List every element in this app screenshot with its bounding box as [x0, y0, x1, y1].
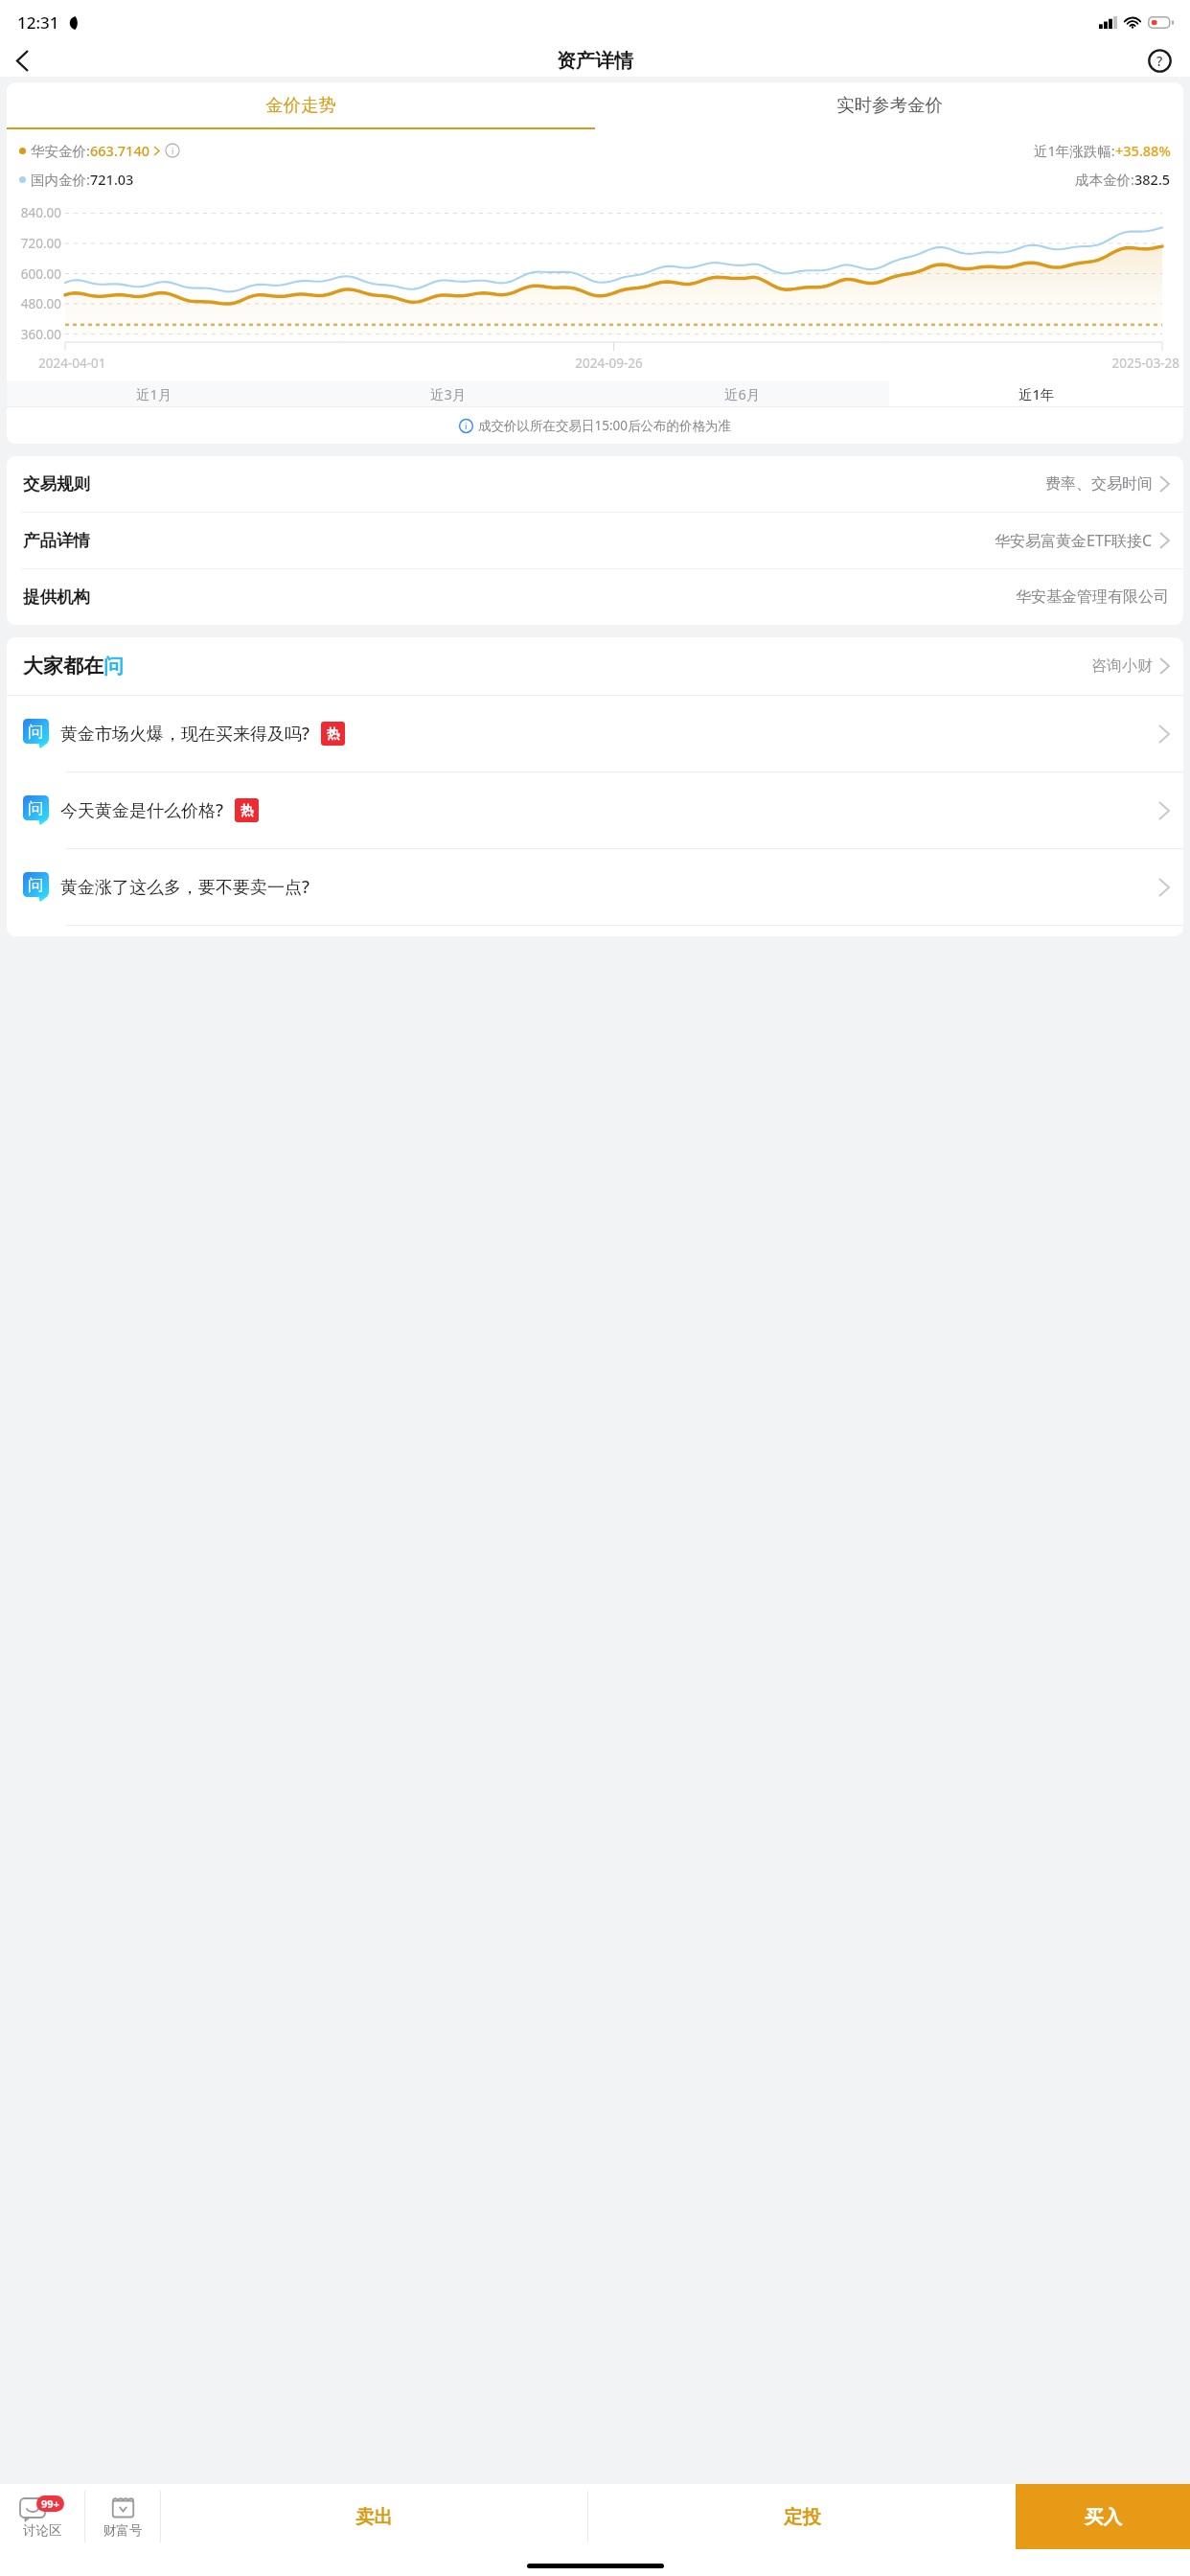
- staticText: 600.00: [14, 265, 61, 283]
- staticText: 华安易富黄金ETF联接C: [995, 530, 1153, 551]
- button[interactable]: 问: [7, 772, 1183, 848]
- staticText: 国内金价:: [31, 170, 90, 189]
- staticText: 成本金价:: [1075, 170, 1134, 189]
- staticText: 产品详情: [23, 530, 90, 551]
- button[interactable]: 定投: [588, 2484, 1016, 2549]
- staticText: 问: [28, 722, 44, 742]
- staticText: 华安金价:: [31, 141, 90, 160]
- button[interactable]: 问: [7, 849, 1183, 925]
- staticText: 今天黄金是什么价格?: [60, 798, 224, 822]
- button[interactable]: 交易规则: [7, 456, 1183, 512]
- button[interactable]: 实时参考金价: [595, 82, 1183, 127]
- staticText: 840.00: [14, 204, 61, 221]
- button[interactable]: Back: [0, 45, 44, 77]
- button[interactable]: Info: [165, 143, 180, 158]
- button[interactable]: 近3月: [301, 380, 595, 406]
- staticText: 663.7140: [90, 141, 150, 160]
- button[interactable]: Help: [1138, 45, 1180, 77]
- staticText: 382.5: [1134, 170, 1171, 189]
- staticText: 定投: [784, 2505, 821, 2529]
- staticText: 交易规则: [23, 473, 90, 494]
- button[interactable]: 近1月: [7, 380, 301, 406]
- staticText: 卖出: [355, 2505, 393, 2529]
- staticText: 问: [28, 875, 44, 895]
- staticText: i: [172, 145, 174, 157]
- staticText: 2025-03-28: [799, 355, 1179, 372]
- staticText: 成交价以所在交易日15:00后公布的价格为准: [478, 417, 732, 434]
- staticText: 财富号: [103, 2522, 143, 2539]
- button[interactable]: 大家都在: [7, 637, 1183, 695]
- staticText: 讨论区: [23, 2522, 62, 2539]
- staticText: 黄金涨了这么多，要不要卖一点?: [60, 875, 310, 899]
- staticText: 12:31: [17, 11, 59, 34]
- staticText: 近1年涨跌幅:: [1034, 141, 1115, 160]
- button[interactable]: 卖出: [161, 2484, 587, 2549]
- button[interactable]: 问: [7, 696, 1183, 771]
- staticText: 热: [327, 725, 340, 742]
- staticText: 实时参考金价: [836, 94, 943, 116]
- staticText: +35.88%: [1115, 141, 1171, 160]
- button[interactable]: 近1年: [889, 380, 1183, 406]
- staticText: 热: [240, 802, 254, 818]
- staticText: 买入: [1085, 2505, 1122, 2529]
- staticText: 720.00: [14, 235, 61, 252]
- staticText: 问: [28, 798, 44, 818]
- staticText: 360.00: [14, 326, 61, 343]
- button[interactable]: 金价走势: [7, 82, 595, 127]
- button[interactable]: 买入: [1016, 2484, 1190, 2549]
- staticText: 华安基金管理有限公司: [1016, 587, 1169, 607]
- button[interactable]: 近6月: [595, 380, 889, 406]
- staticText: 资产详情: [557, 49, 633, 73]
- staticText: 2024-04-01: [38, 355, 419, 372]
- staticText: 近1月: [136, 384, 172, 403]
- button[interactable]: 财富号: [85, 2484, 160, 2549]
- staticText: 近1年: [1018, 384, 1055, 403]
- staticText: ?: [1156, 52, 1163, 70]
- staticText: 2024-09-26: [419, 355, 799, 372]
- staticText: 黄金市场火爆，现在买来得及吗?: [60, 722, 310, 746]
- staticText: 近6月: [724, 384, 761, 403]
- staticText: 721.03: [90, 170, 134, 189]
- staticText: 99+: [41, 2496, 59, 2511]
- staticText: 大家都在: [23, 654, 103, 678]
- staticText: 提供机构: [23, 586, 90, 608]
- button[interactable]: 99+: [0, 2484, 84, 2549]
- staticText: 480.00: [14, 295, 61, 312]
- staticText: i: [465, 420, 468, 432]
- staticText: 金价走势: [265, 94, 336, 116]
- staticText: 近3月: [430, 384, 467, 403]
- staticText: 咨询小财: [1091, 656, 1153, 676]
- staticText: 问: [103, 654, 124, 678]
- button[interactable]: 提供机构: [7, 569, 1183, 625]
- button[interactable]: 产品详情: [7, 513, 1183, 568]
- staticText: 费率、交易时间: [1045, 474, 1153, 494]
